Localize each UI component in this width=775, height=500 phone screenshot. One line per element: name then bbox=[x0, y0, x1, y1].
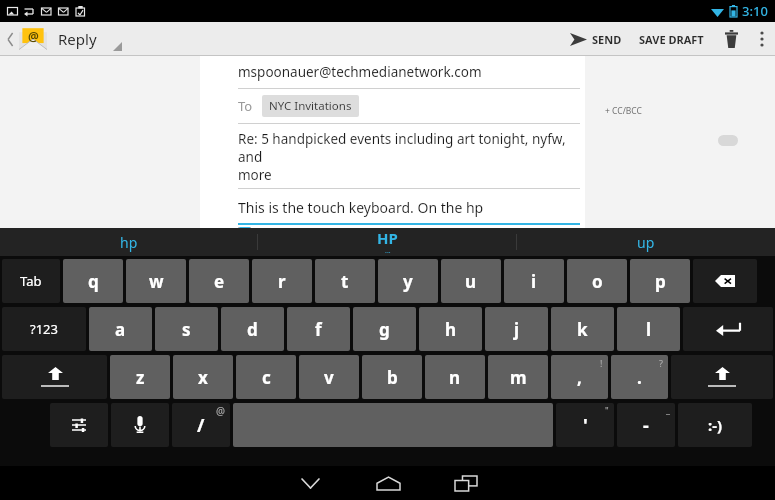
button[interactable]: q bbox=[63, 259, 123, 303]
button[interactable]: u bbox=[441, 259, 501, 303]
button[interactable]: SAVE DRAFT bbox=[630, 22, 713, 56]
staticText: ··· bbox=[385, 248, 391, 256]
button[interactable]: o bbox=[567, 259, 627, 303]
staticText: t bbox=[341, 270, 349, 293]
button[interactable]: l bbox=[617, 307, 680, 351]
staticText: " bbox=[605, 404, 609, 416]
staticText: p bbox=[655, 270, 666, 293]
button[interactable]: e bbox=[189, 259, 249, 303]
staticText: k bbox=[577, 318, 588, 341]
staticText: :-) bbox=[708, 415, 723, 435]
button[interactable]: Enter bbox=[683, 307, 773, 351]
staticText: n bbox=[449, 366, 461, 389]
button[interactable]: d bbox=[221, 307, 284, 351]
staticText: / bbox=[197, 413, 205, 438]
button[interactable]: Voice input bbox=[111, 403, 169, 447]
staticText: l bbox=[646, 318, 652, 341]
button[interactable]: Shift bbox=[2, 355, 107, 399]
staticText: @ bbox=[216, 404, 225, 418]
staticText: ? bbox=[659, 357, 663, 369]
button[interactable]: - bbox=[617, 403, 675, 447]
button[interactable]: z bbox=[110, 355, 170, 399]
staticText: b bbox=[387, 366, 398, 389]
button[interactable]: Shift bbox=[671, 355, 773, 399]
button[interactable]: b bbox=[362, 355, 422, 399]
button[interactable]: Attach bbox=[718, 135, 738, 146]
staticText: ' bbox=[583, 413, 588, 438]
staticText: , bbox=[577, 366, 582, 389]
staticText: 3:10 bbox=[742, 2, 768, 20]
button[interactable]: n bbox=[425, 355, 485, 399]
button[interactable]: Input method bbox=[50, 403, 108, 447]
staticText: HP bbox=[377, 228, 398, 248]
button[interactable]: ' bbox=[556, 403, 614, 447]
button[interactable]: Emoticons bbox=[678, 403, 752, 447]
staticText: @ bbox=[28, 28, 39, 44]
staticText: r bbox=[278, 270, 286, 293]
button[interactable]: h bbox=[419, 307, 482, 351]
button[interactable]: k bbox=[551, 307, 614, 351]
staticText: w bbox=[149, 270, 164, 293]
button[interactable]: w bbox=[126, 259, 186, 303]
button[interactable]: g bbox=[353, 307, 416, 351]
button[interactable]: Tab bbox=[2, 259, 60, 303]
staticText: hp bbox=[120, 233, 138, 252]
staticText: - bbox=[643, 413, 649, 438]
button[interactable]: v bbox=[299, 355, 359, 399]
staticText: s bbox=[182, 318, 191, 341]
staticText: g bbox=[379, 318, 390, 341]
button[interactable]: a bbox=[89, 307, 152, 351]
button[interactable]: c bbox=[236, 355, 296, 399]
staticText: z bbox=[136, 366, 145, 389]
staticText: . bbox=[637, 366, 642, 389]
staticText: ! bbox=[600, 357, 603, 369]
staticText: up bbox=[637, 233, 655, 252]
button[interactable]: Discard bbox=[713, 22, 749, 56]
staticText: q bbox=[88, 270, 99, 293]
button[interactable]: p bbox=[630, 259, 690, 303]
button[interactable]: / bbox=[172, 403, 230, 447]
button[interactable]: SEND bbox=[562, 22, 630, 56]
staticText: This is the touch keyboard. On the hp bbox=[238, 198, 484, 217]
staticText: c bbox=[262, 366, 271, 389]
button[interactable]: j bbox=[485, 307, 548, 351]
staticText: SAVE DRAFT bbox=[639, 32, 704, 47]
button[interactable]: ?123 bbox=[2, 307, 86, 351]
button[interactable]: up bbox=[517, 228, 775, 256]
button[interactable]: Hide keyboard bbox=[271, 466, 349, 500]
staticText: more bbox=[238, 166, 272, 184]
staticText: a bbox=[115, 318, 126, 341]
button[interactable]: s bbox=[155, 307, 218, 351]
button[interactable]: m bbox=[488, 355, 548, 399]
button[interactable]: + CC/BCC bbox=[605, 105, 642, 117]
staticText: o bbox=[592, 270, 603, 293]
other: Up bbox=[7, 33, 14, 46]
staticText: NYC Invitations bbox=[269, 98, 352, 114]
button[interactable]: Backspace bbox=[693, 259, 757, 303]
button[interactable]: f bbox=[287, 307, 350, 351]
staticText: _ bbox=[666, 403, 670, 415]
staticText: mspoonauer@techmedianetwork.com bbox=[238, 63, 482, 81]
button[interactable]: hp bbox=[0, 228, 257, 256]
button[interactable]: Home bbox=[349, 466, 427, 500]
staticText: Reply bbox=[58, 29, 97, 49]
button[interactable]: HP bbox=[258, 228, 516, 256]
button[interactable]: Recents bbox=[427, 466, 505, 500]
button[interactable]: , bbox=[551, 355, 608, 399]
staticText: v bbox=[324, 366, 334, 389]
button[interactable]: Up bbox=[4, 27, 125, 51]
button[interactable]: More options bbox=[749, 22, 775, 56]
button[interactable]: r bbox=[252, 259, 312, 303]
staticText: y bbox=[403, 270, 413, 293]
button[interactable]: i bbox=[504, 259, 564, 303]
button[interactable]: y bbox=[378, 259, 438, 303]
staticText: d bbox=[247, 318, 258, 341]
staticText: e bbox=[214, 270, 225, 293]
button[interactable]: NYC Invitations bbox=[262, 95, 359, 117]
button[interactable]: x bbox=[173, 355, 233, 399]
button[interactable]: . bbox=[611, 355, 668, 399]
button[interactable]: t bbox=[315, 259, 375, 303]
staticText: m bbox=[510, 366, 527, 389]
staticText: x bbox=[198, 366, 208, 389]
